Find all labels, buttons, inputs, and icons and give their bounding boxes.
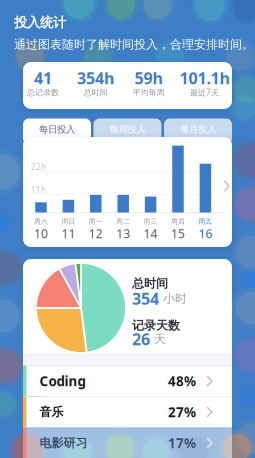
staticText: 16 xyxy=(198,225,212,241)
staticText: 周六 xyxy=(34,217,48,226)
staticText: 周一 xyxy=(89,217,103,226)
staticText: 27% xyxy=(168,403,196,421)
staticText: 每日投入 xyxy=(39,124,75,135)
staticText: 周日 xyxy=(61,217,75,226)
staticText: 11h xyxy=(31,185,46,195)
staticText: 总时间 xyxy=(132,276,168,291)
staticText: 投入统计 xyxy=(14,14,66,31)
staticText: 26 xyxy=(132,328,150,350)
staticText: 记录天数 xyxy=(132,318,180,333)
staticText: 14 xyxy=(144,225,158,241)
staticText: 17% xyxy=(168,434,196,452)
staticText: 周五 xyxy=(198,217,212,226)
staticText: Coding xyxy=(39,372,85,390)
staticText: 48% xyxy=(168,372,196,390)
staticText: 周二 xyxy=(116,217,130,226)
staticText: 天 xyxy=(154,332,166,346)
staticText: 59h xyxy=(134,67,162,89)
staticText: 总记录数 xyxy=(27,88,59,97)
staticText: 11 xyxy=(61,225,75,241)
staticText: 10 xyxy=(34,225,48,241)
staticText: 41 xyxy=(34,67,52,89)
staticText: 354h xyxy=(77,67,114,89)
staticText: 总时间 xyxy=(83,88,107,97)
staticText: 音乐 xyxy=(39,405,63,419)
staticText: 最近7天 xyxy=(190,87,219,98)
staticText: 通过图表随时了解时间投入，合理安排时间。 xyxy=(14,37,254,52)
button[interactable]: Coding xyxy=(23,365,232,396)
staticText: 每月投入 xyxy=(180,124,216,135)
staticText: 周三 xyxy=(144,217,158,226)
staticText: 电影研习 xyxy=(39,436,87,450)
staticText: 平均每周 xyxy=(132,88,164,97)
button[interactable]: 每周投入 xyxy=(93,118,161,144)
staticText: 小时 xyxy=(163,291,187,306)
button[interactable]: 电影研习 xyxy=(23,427,232,458)
staticText: 13 xyxy=(116,225,130,241)
staticText: 周四 xyxy=(171,217,185,226)
staticText: 12 xyxy=(89,225,103,241)
button[interactable]: 音乐 xyxy=(23,396,232,427)
staticText: 354 xyxy=(132,288,159,309)
staticText: 22h xyxy=(31,162,46,172)
staticText: 15 xyxy=(171,225,185,241)
button[interactable]: 每日投入 xyxy=(23,118,91,144)
staticText: 101.1h xyxy=(179,67,229,89)
button[interactable]: 下一周 xyxy=(220,177,234,195)
staticText: 每周投入 xyxy=(109,124,145,135)
button[interactable]: 每月投入 xyxy=(164,118,232,144)
